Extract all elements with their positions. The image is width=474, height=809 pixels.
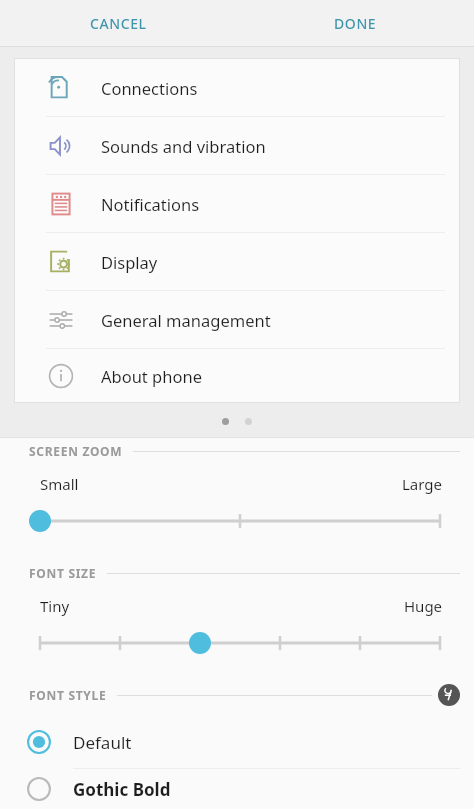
staticText: Small [40,474,79,494]
staticText: DONE [334,14,377,33]
button[interactable] [0,508,474,534]
staticText: FONT STYLE [29,687,107,703]
button[interactable]: Connections [15,59,459,116]
button[interactable]: CANCEL [0,0,237,46]
staticText: General management [101,309,271,331]
staticText: Display [101,251,158,273]
staticText: Sounds and vibration [101,135,266,157]
button[interactable] [0,630,474,656]
button[interactable]: Notifications [15,175,459,232]
staticText: Notifications [101,193,200,215]
button[interactable]: Display [15,233,459,290]
staticText: About phone [101,365,202,387]
staticText: Tiny [40,596,70,616]
button[interactable]: DONE [237,0,474,46]
staticText: FONT SIZE [29,565,97,581]
button[interactable]: Download fonts [438,684,460,706]
staticText: Large [402,474,443,494]
button[interactable]: Gothic Bold [0,769,474,809]
button[interactable]: Sounds and vibration [15,117,459,174]
button[interactable]: General management [15,291,459,348]
staticText: Huge [404,596,443,616]
button[interactable]: About phone [15,349,459,402]
button[interactable]: Default [0,716,474,768]
staticText: Default [73,731,132,754]
staticText: SCREEN ZOOM [29,443,123,459]
staticText: CANCEL [90,14,147,33]
staticText: Connections [101,77,198,99]
staticText: Gothic Bold [73,778,171,801]
